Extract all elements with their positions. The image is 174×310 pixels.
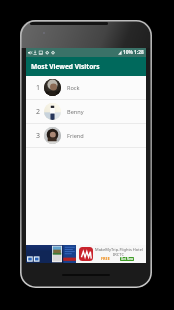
- staticText: IRCTC: [113, 252, 125, 257]
- staticText: Rock: [67, 84, 80, 92]
- staticText: 2: [36, 107, 41, 117]
- button[interactable]: Get Now: [120, 257, 134, 261]
- button[interactable]: 2: [26, 100, 146, 123]
- staticText: Friend: [67, 132, 84, 140]
- staticText: 3: [36, 131, 41, 141]
- staticText: 10% 1:28: [123, 49, 144, 56]
- staticText: Benny: [67, 108, 84, 116]
- staticText: 1: [36, 83, 41, 93]
- button[interactable]: MakeMyTrip-Flights Hotel: [26, 245, 146, 263]
- button[interactable]: 3: [26, 124, 146, 147]
- button[interactable]: Most Viewed Visitors: [26, 57, 146, 76]
- staticText: Get Now: [121, 257, 134, 261]
- staticText: Most Viewed Visitors: [31, 62, 100, 71]
- staticText: FREE: [101, 256, 110, 261]
- staticText: MakeMyTrip-Flights Hotel: [95, 247, 143, 252]
- button[interactable]: 1: [26, 76, 146, 99]
